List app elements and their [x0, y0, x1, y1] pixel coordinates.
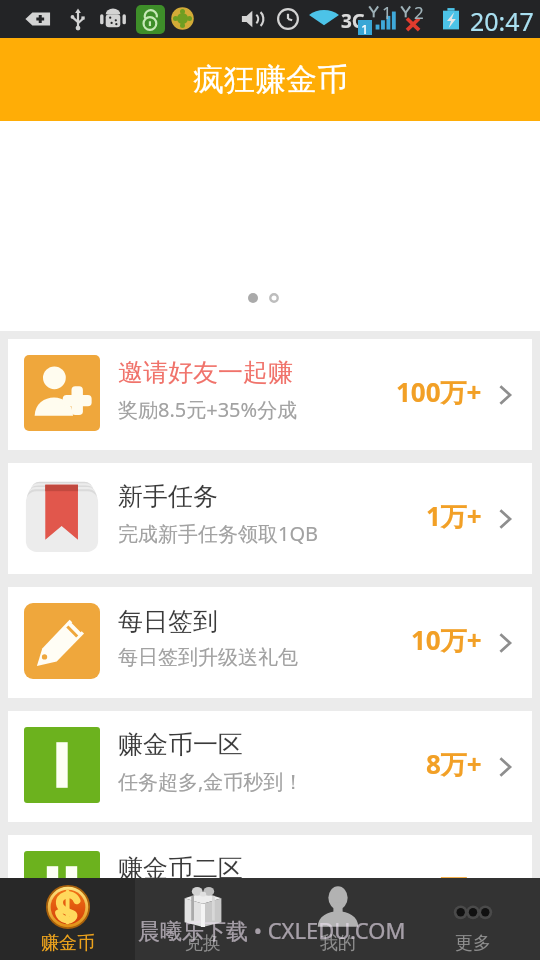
button[interactable]: 新手任务: [8, 463, 532, 574]
staticText: 赚金币一区: [118, 729, 243, 760]
staticText: 2: [414, 1, 424, 24]
button[interactable]: More: [405, 878, 540, 960]
staticText: 奖励8.5元+35%分成: [118, 396, 298, 423]
staticText: 我的: [320, 932, 356, 955]
staticText: 兑换: [185, 932, 221, 955]
staticText: 1万+: [426, 498, 482, 534]
button[interactable]: Mine: [270, 878, 405, 960]
staticText: 每日签到: [118, 606, 218, 637]
staticText: 疯狂赚金币: [193, 60, 348, 99]
staticText: 完成新手任务领取1QB: [118, 520, 319, 547]
button[interactable]: Earn coins: [0, 878, 135, 960]
staticText: 赚金币二区: [118, 853, 243, 878]
staticText: 任务超多,金币秒到！: [118, 768, 304, 795]
button[interactable]: 赚金币二区: [8, 835, 532, 878]
staticText: 晨曦乐下载 • CXLEDU.COM: [138, 915, 406, 945]
staticText: 每日签到升级送礼包: [118, 645, 298, 670]
staticText: 100万+: [396, 374, 482, 410]
staticText: 6万+: [426, 870, 482, 878]
staticText: 8万+: [426, 746, 482, 782]
button[interactable]: 每日签到: [8, 587, 532, 698]
staticText: 新手任务: [118, 481, 218, 512]
staticText: 1: [361, 20, 369, 35]
staticText: 3G: [341, 8, 366, 34]
button[interactable]: Exchange: [135, 878, 270, 960]
staticText: 1: [382, 1, 392, 24]
staticText: 更多: [455, 932, 491, 955]
staticText: 邀请好友一起赚: [118, 357, 293, 388]
button[interactable]: 邀请好友一起赚: [8, 339, 532, 450]
staticText: 赚金币: [41, 932, 95, 955]
staticText: 20:47: [470, 4, 534, 38]
staticText: 10万+: [411, 622, 482, 658]
button[interactable]: 赚金币一区: [8, 711, 532, 822]
